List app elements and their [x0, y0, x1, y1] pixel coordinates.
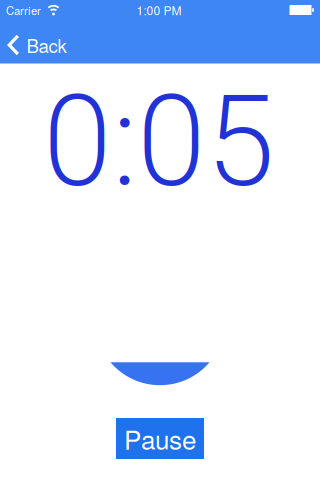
button[interactable]: Pause [116, 418, 204, 459]
button[interactable]: Back [7, 32, 66, 58]
staticText: Back [26, 32, 66, 58]
staticText: Carrier [6, 2, 41, 18]
staticText: Pause [124, 420, 196, 457]
staticText: 1:00 PM [136, 1, 181, 19]
staticText: 0:05 [43, 67, 275, 216]
